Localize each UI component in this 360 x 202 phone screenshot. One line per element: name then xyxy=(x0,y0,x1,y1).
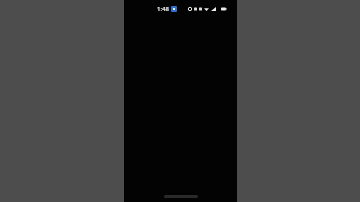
button[interactable]: 1:48 xyxy=(157,5,177,13)
other: Notification xyxy=(171,6,177,12)
button[interactable] xyxy=(124,0,237,202)
staticText: 1:48 xyxy=(157,5,169,13)
button[interactable]: Home xyxy=(164,194,198,198)
button[interactable]: Status icons xyxy=(188,7,227,11)
